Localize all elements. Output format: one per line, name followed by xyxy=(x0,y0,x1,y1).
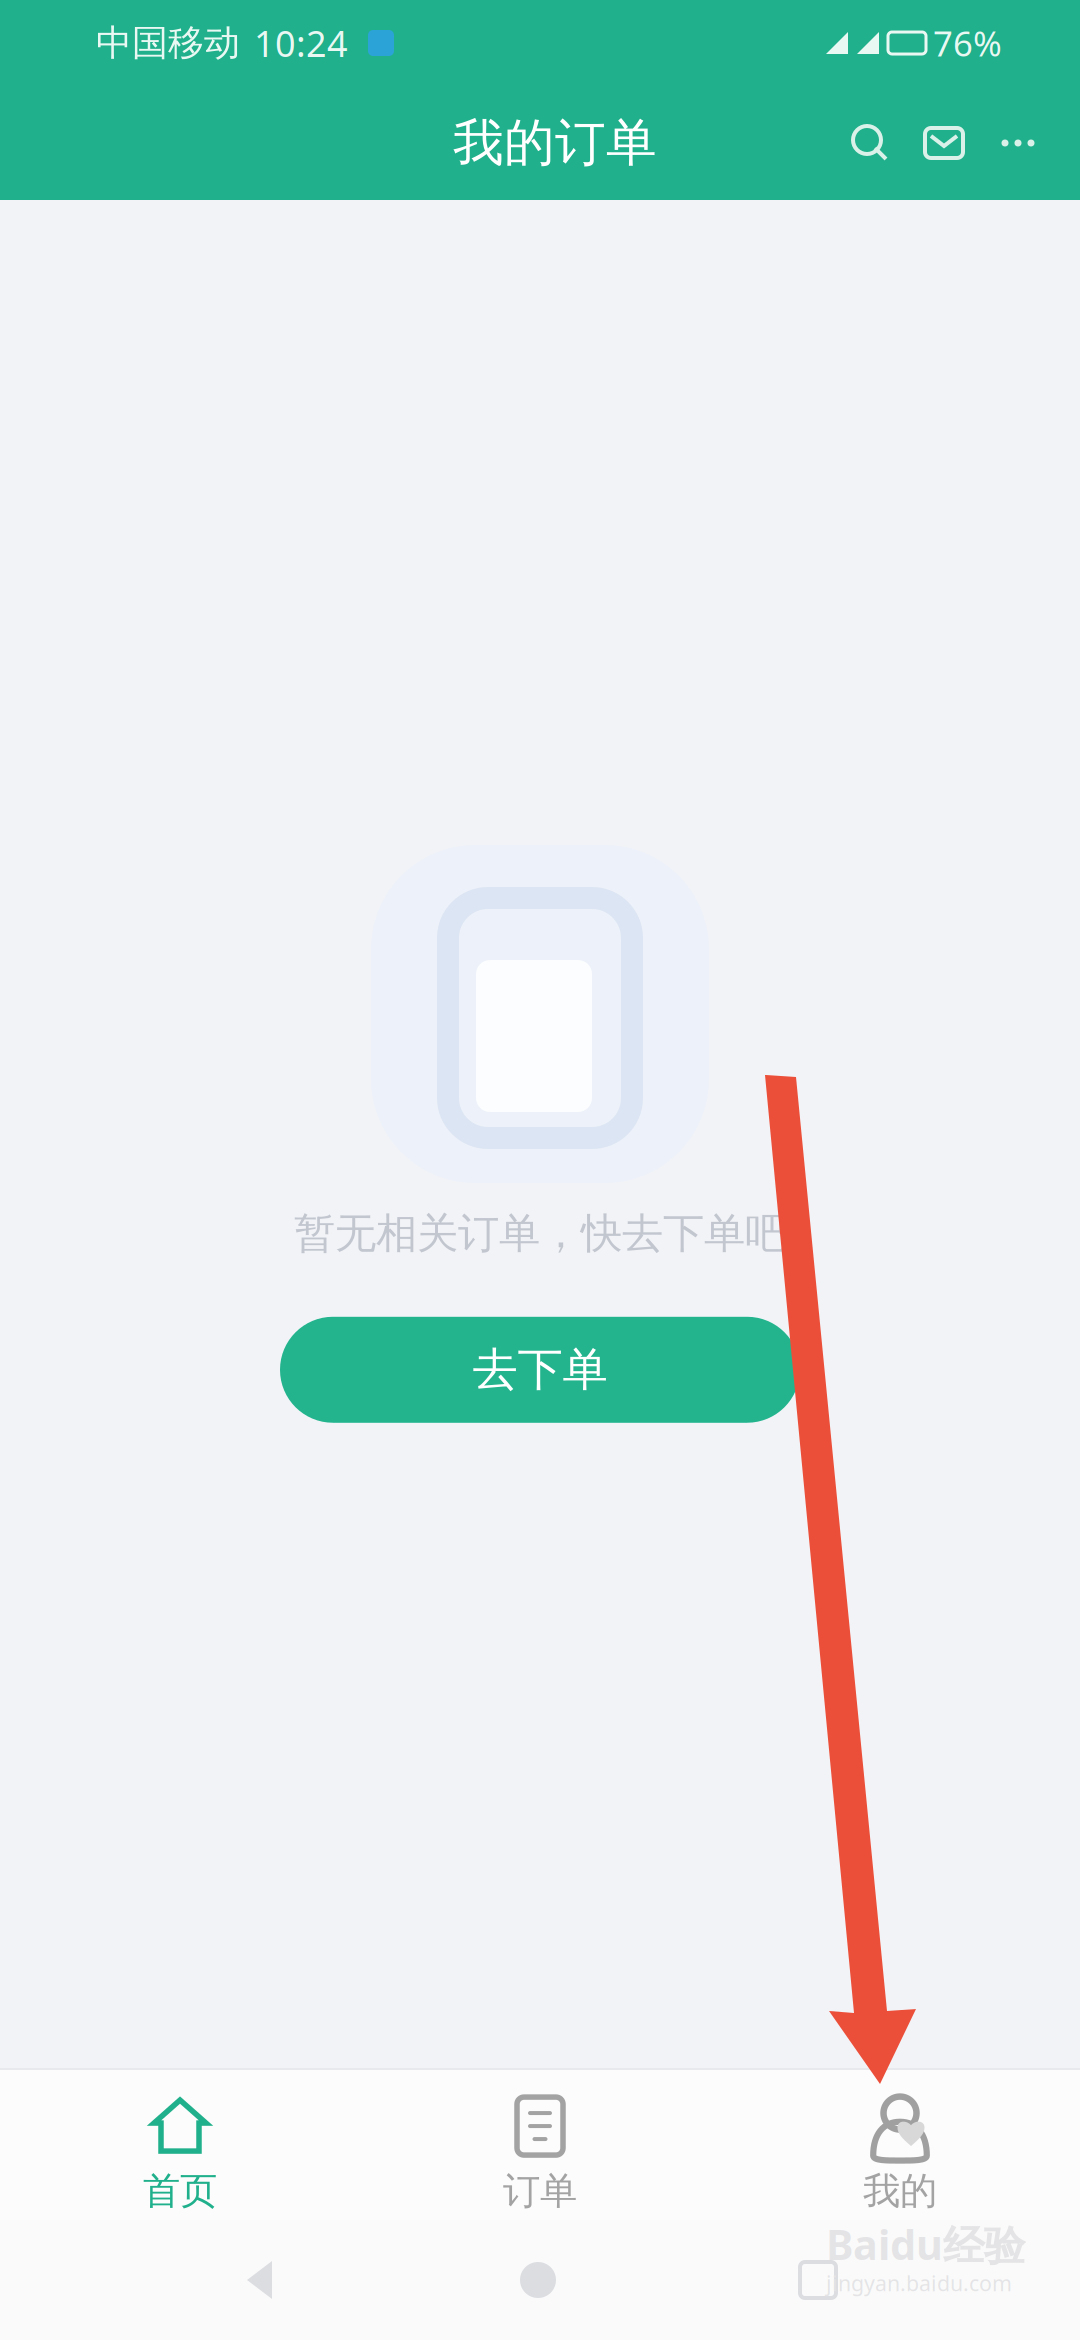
staticText: 10:24 xyxy=(254,19,348,67)
staticText: Baidu经验 xyxy=(826,2216,1025,2271)
staticText: 我的 xyxy=(863,2168,937,2214)
staticText: 暂无相关订单，快去下单吧 xyxy=(294,1208,786,1259)
staticText: 首页 xyxy=(143,2168,217,2214)
button[interactable]: 搜索 xyxy=(848,121,892,165)
button[interactable]: 更多 xyxy=(996,121,1040,165)
staticText: jingyan.baidu.com xyxy=(826,2269,1012,2297)
staticText: 去下单 xyxy=(472,1342,607,1398)
staticText: 我的订单 xyxy=(453,112,657,174)
button[interactable]: 消息 xyxy=(922,121,966,165)
staticText: 76% xyxy=(933,20,1002,66)
staticText: 订单 xyxy=(503,2168,577,2214)
staticText: 中国移动 xyxy=(96,21,240,65)
button[interactable]: 首页 xyxy=(0,2070,360,2220)
button[interactable]: 我的 xyxy=(720,2070,1080,2220)
button[interactable]: 去下单 xyxy=(280,1317,800,1423)
button[interactable]: 订单 xyxy=(360,2070,720,2220)
